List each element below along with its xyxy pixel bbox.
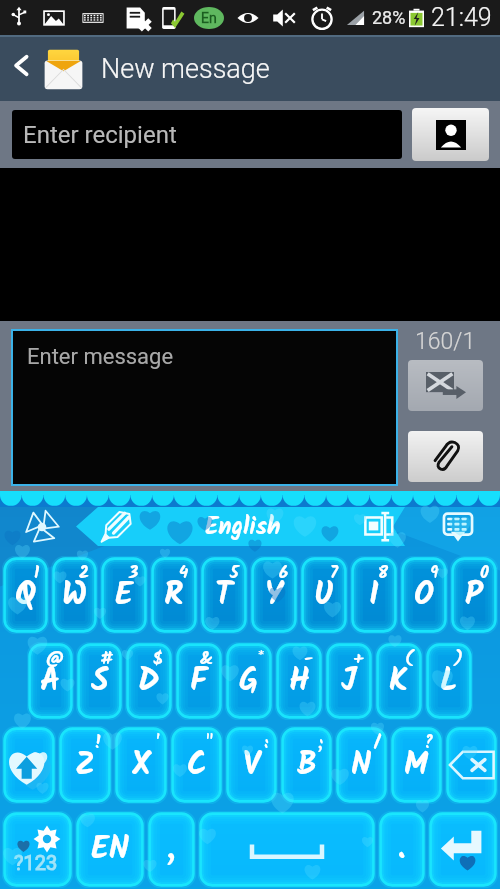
button[interactable]: E — [100, 556, 148, 634]
button[interactable]: Attach — [408, 431, 483, 482]
button[interactable]: A — [27, 642, 74, 720]
staticText: & — [200, 646, 214, 673]
staticText: G — [239, 656, 259, 707]
staticText: N — [351, 740, 372, 791]
staticText: English — [205, 508, 281, 546]
button[interactable]: Q — [2, 556, 49, 634]
button[interactable]: Enter message — [13, 331, 396, 484]
button[interactable]: R — [150, 556, 198, 634]
button[interactable]: W — [51, 556, 98, 634]
staticText: P — [465, 570, 483, 621]
button[interactable]: EN — [75, 811, 145, 888]
button[interactable]: Back — [0, 37, 500, 101]
staticText: 6 — [279, 560, 289, 587]
staticText: Z — [75, 740, 96, 791]
staticText: ! — [94, 730, 103, 757]
staticText: ) — [454, 646, 464, 673]
staticText: 0 — [480, 560, 489, 587]
button[interactable]: H — [275, 642, 323, 720]
staticText: Enter recipient — [23, 121, 177, 149]
other: Back — [11, 54, 34, 84]
staticText: U — [314, 570, 334, 621]
button[interactable]: Space — [198, 811, 376, 888]
button[interactable]: Z — [58, 726, 112, 804]
staticText: ?123 — [14, 851, 58, 874]
staticText: ' — [155, 730, 159, 757]
staticText: B — [297, 740, 317, 791]
button[interactable]: Shift — [2, 726, 56, 804]
button[interactable]: M — [390, 726, 443, 804]
button[interactable]: , — [147, 811, 196, 888]
staticText: Y — [265, 570, 283, 621]
button[interactable]: G — [225, 642, 273, 720]
button[interactable]: F — [175, 642, 223, 720]
button[interactable]: X — [114, 726, 168, 804]
button[interactable]: Backspace — [445, 726, 498, 804]
staticText: 5 — [230, 560, 239, 587]
button[interactable]: Contacts — [412, 108, 489, 161]
staticText: L — [440, 656, 458, 707]
button[interactable]: Hide keyboard — [416, 507, 500, 546]
staticText: # — [100, 646, 114, 673]
button[interactable]: Send — [408, 360, 483, 411]
staticText: / — [374, 730, 379, 757]
staticText: - — [304, 646, 314, 673]
button[interactable]: Handwriting — [84, 507, 146, 546]
button[interactable]: I — [350, 556, 398, 634]
staticText: ? — [423, 730, 434, 757]
staticText: 7 — [330, 560, 339, 587]
button[interactable]: Enter — [428, 811, 498, 888]
staticText: O — [414, 570, 434, 621]
staticText: , — [167, 824, 176, 875]
staticText: 1 — [34, 560, 40, 587]
staticText: EN — [91, 824, 129, 875]
staticText: . — [398, 824, 406, 875]
staticText: E — [115, 570, 133, 621]
staticText: F — [190, 656, 208, 707]
staticText: J — [341, 656, 357, 707]
staticText: : — [264, 730, 269, 757]
button[interactable]: B — [280, 726, 333, 804]
button[interactable]: Y — [250, 556, 298, 634]
staticText: W — [62, 570, 88, 621]
staticText: H — [289, 656, 310, 707]
staticText: 3 — [129, 560, 139, 587]
button[interactable]: J — [325, 642, 373, 720]
button[interactable]: U — [300, 556, 348, 634]
button[interactable]: English — [146, 507, 344, 546]
staticText: + — [353, 646, 364, 673]
button[interactable]: N — [335, 726, 388, 804]
staticText: 9 — [430, 560, 439, 587]
staticText: ; — [318, 730, 324, 757]
button[interactable]: Symbols — [2, 811, 73, 888]
button[interactable]: . — [378, 811, 426, 888]
staticText: 28% — [372, 7, 406, 28]
staticText: " — [205, 730, 214, 757]
staticText: S — [91, 656, 109, 707]
button[interactable]: Enter recipient — [12, 110, 402, 159]
button[interactable]: O — [400, 556, 448, 634]
staticText: R — [164, 570, 184, 621]
button[interactable]: Voice input — [0, 507, 84, 546]
staticText: * — [257, 646, 264, 673]
staticText: I — [369, 570, 379, 621]
staticText: M — [404, 740, 429, 791]
button[interactable]: S — [76, 642, 123, 720]
button[interactable]: L — [425, 642, 473, 720]
staticText: K — [389, 656, 409, 707]
button[interactable]: K — [375, 642, 423, 720]
button[interactable]: D — [125, 642, 173, 720]
button[interactable]: C — [170, 726, 223, 804]
staticText: Q — [15, 570, 37, 621]
staticText: 21:49 — [431, 3, 492, 32]
button[interactable]: P — [450, 556, 498, 634]
staticText: T — [215, 570, 233, 621]
staticText: New message — [101, 53, 270, 85]
staticText: 2 — [79, 560, 89, 587]
button[interactable]: V — [225, 726, 278, 804]
staticText: D — [138, 656, 160, 707]
button[interactable]: Split keyboard — [344, 507, 416, 546]
staticText: En — [201, 10, 217, 26]
staticText: 160/1 — [415, 328, 476, 355]
button[interactable]: T — [200, 556, 248, 634]
